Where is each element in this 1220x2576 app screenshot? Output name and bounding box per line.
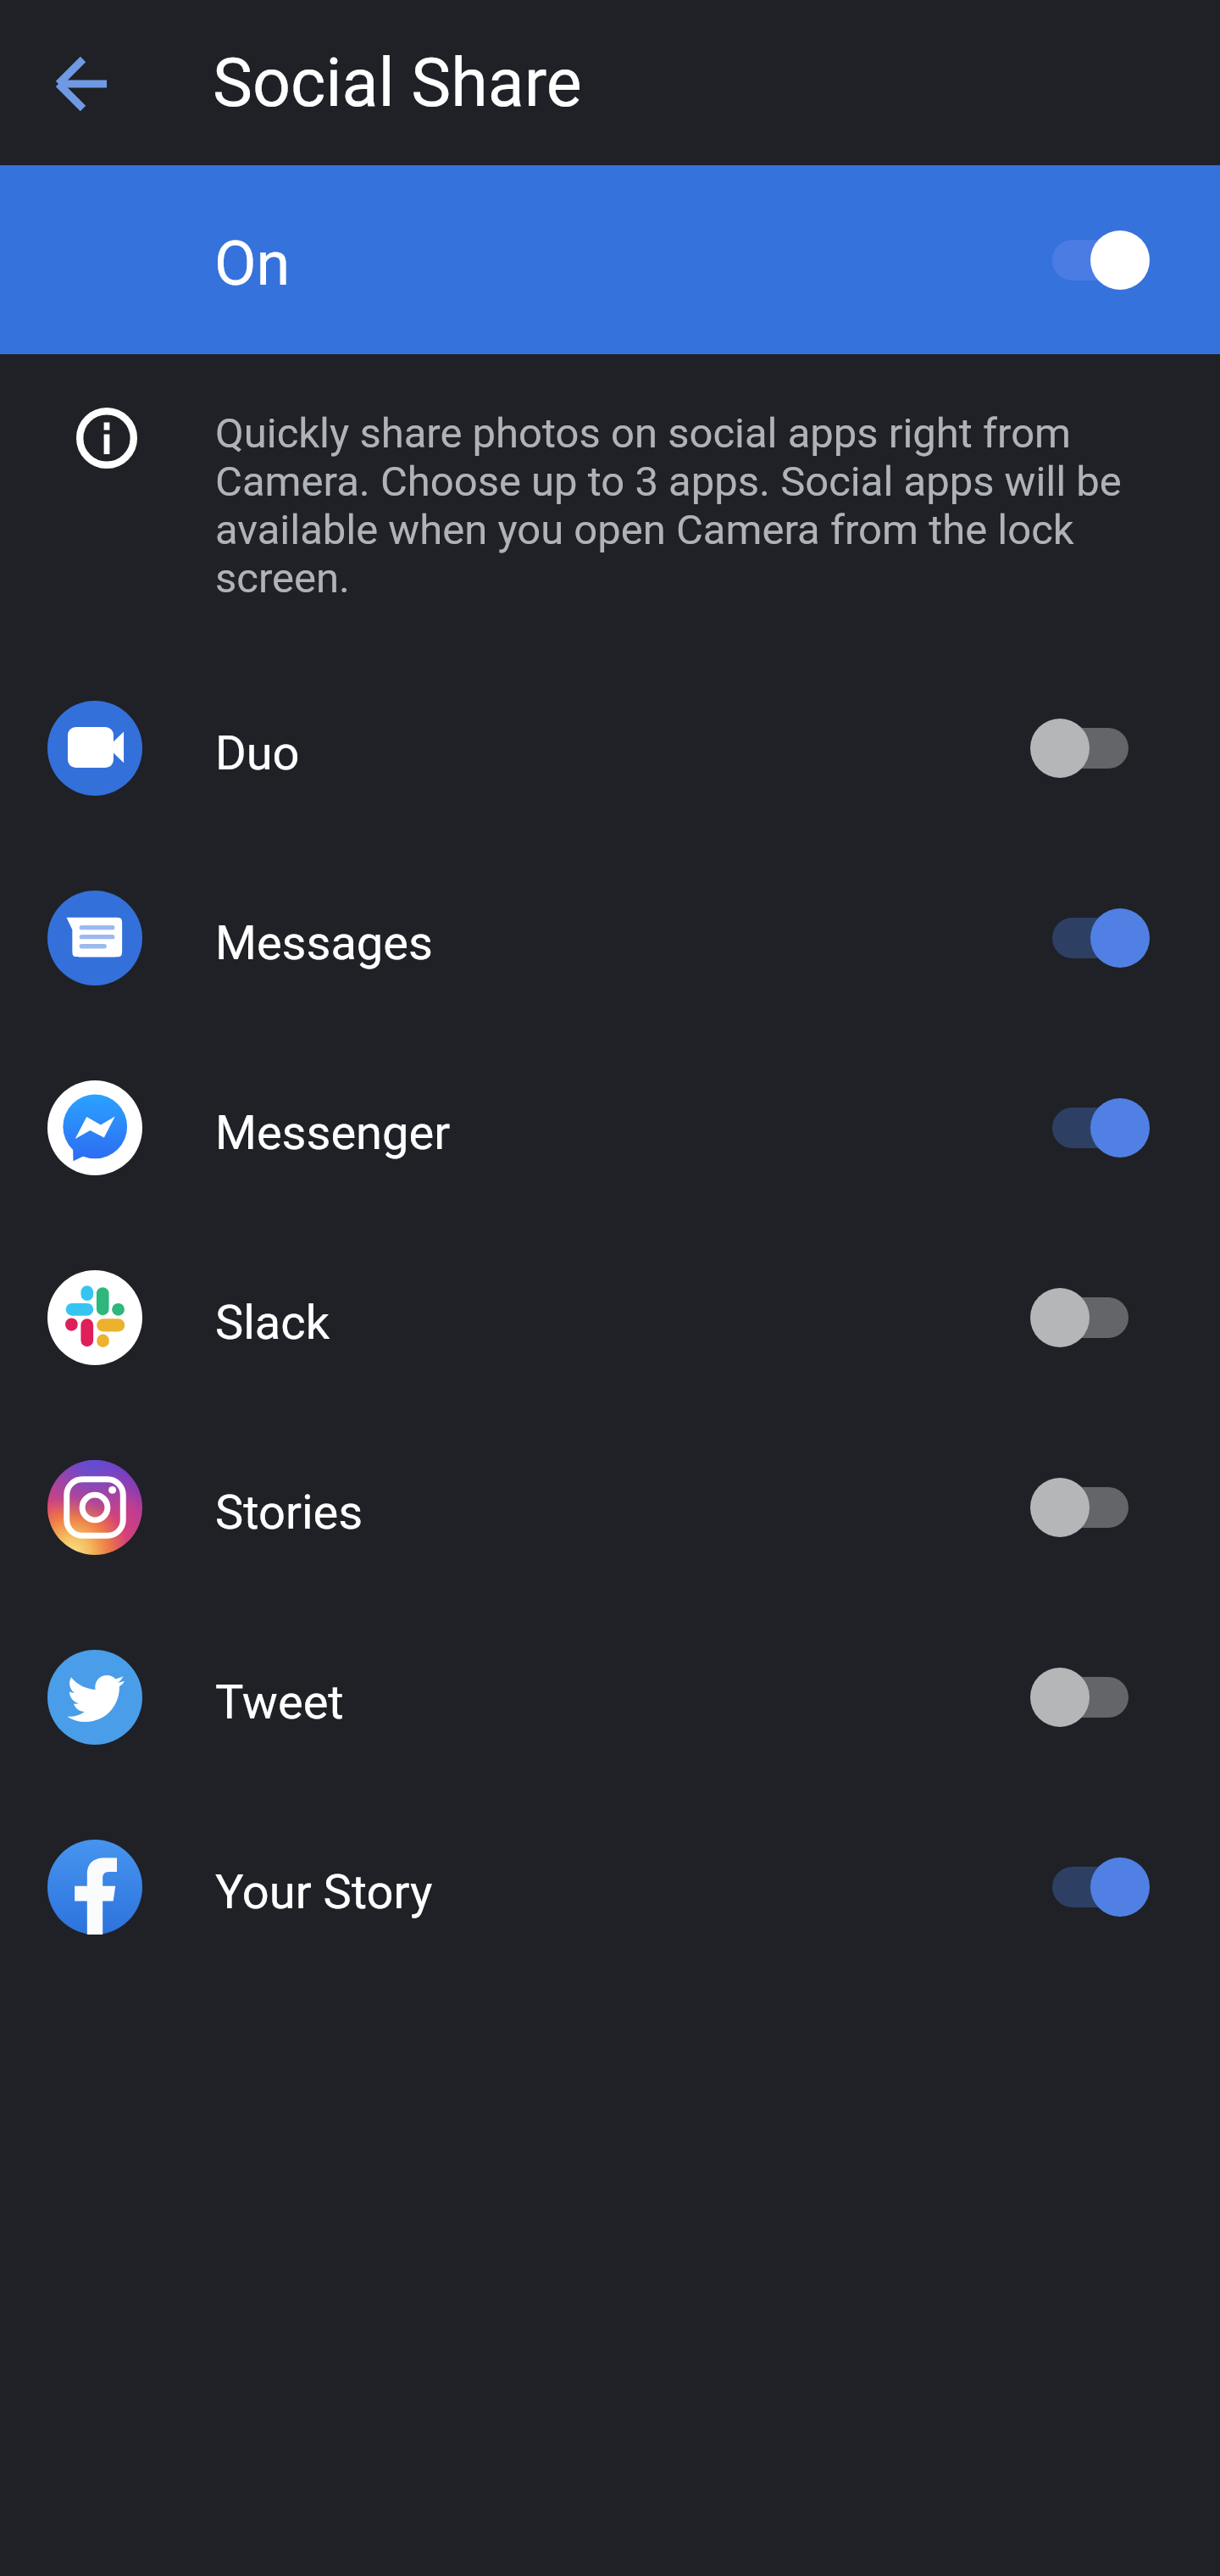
button[interactable]: Messages (0, 843, 1220, 1033)
staticText: Slack (215, 1295, 330, 1351)
staticText: Social Share (213, 44, 582, 123)
button[interactable]: Duo (0, 653, 1220, 843)
staticText: Tweet (215, 1674, 344, 1730)
button[interactable]: Toggle Messenger (1052, 1085, 1188, 1170)
staticText: On (214, 228, 291, 299)
button[interactable]: Toggle Duo (1052, 706, 1188, 791)
staticText: Messenger (215, 1105, 451, 1161)
button[interactable]: Social Share on (1052, 218, 1188, 303)
button[interactable]: Toggle Tweet (1052, 1655, 1188, 1740)
button[interactable]: Slack (0, 1223, 1220, 1413)
button[interactable]: Toggle Slack (1052, 1275, 1188, 1360)
button[interactable]: On (0, 165, 1220, 354)
button[interactable]: Toggle Stories (1052, 1465, 1188, 1550)
button[interactable]: Your Story (0, 1792, 1220, 1982)
staticText: Stories (215, 1485, 363, 1541)
button[interactable]: Stories (0, 1413, 1220, 1602)
staticText: Messages (215, 915, 433, 971)
button[interactable]: Toggle Your Story (1052, 1845, 1188, 1929)
button[interactable]: Messenger (0, 1033, 1220, 1223)
button[interactable]: Tweet (0, 1602, 1220, 1792)
button[interactable]: Toggle Messages (1052, 896, 1188, 980)
button[interactable]: Back (23, 23, 143, 143)
staticText: Quickly share photos on social apps righ… (215, 409, 1139, 602)
staticText: Your Story (215, 1864, 433, 1920)
staticText: Duo (215, 725, 300, 781)
